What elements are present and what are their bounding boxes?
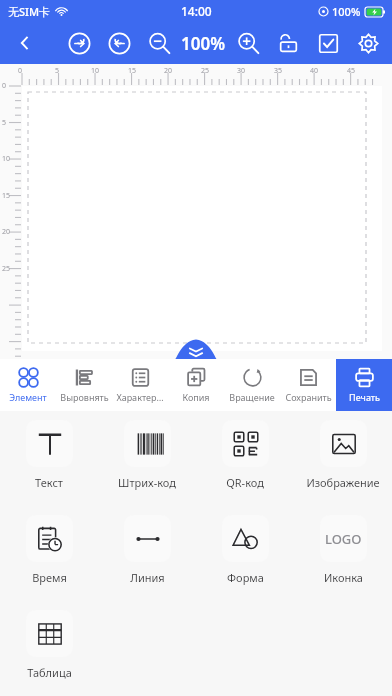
button[interactable]: Выровнять [56,359,112,411]
staticText: Элемент [9,391,47,403]
staticText: QR-код [226,475,264,490]
staticText: Иконка [324,570,363,585]
staticText: Штрих-код [118,475,176,490]
staticText: Таблица [27,665,72,680]
button[interactable]: Копия [168,359,224,411]
staticText: 30 [237,66,246,76]
staticText: 0 [18,66,23,76]
staticText: Сохранить [285,391,332,403]
staticText: 20 [2,227,11,237]
staticText: 5 [55,66,60,76]
staticText: 40 [310,66,319,76]
staticText: Выровнять [60,391,109,403]
staticText: 10 [91,66,100,76]
button[interactable]: Печать [336,359,392,411]
button[interactable]: LOGO [294,506,392,585]
button[interactable]: Settings [348,24,388,62]
button[interactable]: Штрих-код [98,411,196,490]
staticText: 14:00 [181,3,212,19]
button[interactable]: Сохранить [280,359,336,411]
staticText: Изображение [306,475,380,490]
staticText: 5 [2,118,7,128]
staticText: LOGO [325,530,362,548]
button[interactable]: Изображение [294,411,392,490]
button[interactable]: Таблица [0,601,98,680]
button[interactable]: 100% [181,26,226,60]
staticText: 35 [274,66,283,76]
button[interactable]: Текст [0,411,98,490]
staticText: 无SIM卡 [8,4,51,19]
button[interactable]: Характер… [112,359,168,411]
staticText: 10 [2,154,11,164]
button[interactable]: Undo [59,24,99,62]
staticText: 15 [2,191,11,201]
staticText: Время [32,570,67,585]
staticText: Текст [35,475,63,490]
button[interactable]: QR-код [196,411,294,490]
staticText: Форма [227,570,264,585]
staticText: 25 [201,66,210,76]
button[interactable]: Форма [196,506,294,585]
staticText: 0 [2,81,7,91]
staticText: Копия [182,391,210,403]
staticText: Характер… [116,391,164,403]
button[interactable]: Время [0,506,98,585]
button[interactable]: Lock [268,24,308,62]
staticText: 25 [2,264,11,274]
button[interactable]: Линия [98,506,196,585]
staticText: Вращение [229,391,275,403]
button[interactable]: Элемент [0,359,56,411]
staticText: 20 [164,66,173,76]
button[interactable]: Redo [99,24,139,62]
button[interactable]: Zoom out [139,24,179,62]
staticText: 45 [347,66,356,76]
staticText: Линия [130,570,165,585]
button[interactable]: Back [10,28,40,58]
staticText: 100% [332,4,361,19]
button[interactable]: Expand panel [172,337,220,363]
button[interactable]: Вращение [224,359,280,411]
button[interactable]: Zoom in [228,24,268,62]
staticText: 100% [181,32,226,55]
staticText: 15 [128,66,137,76]
button[interactable]: Select all [308,24,348,62]
staticText: Печать [349,391,380,403]
